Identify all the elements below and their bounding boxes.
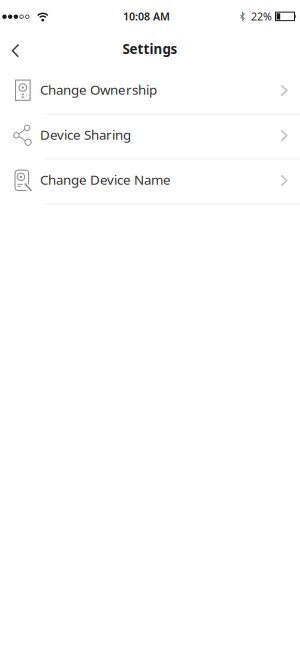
staticText: 22% — [251, 9, 272, 23]
staticText: 10:08 AM — [123, 9, 170, 24]
staticText: Device Sharing — [40, 126, 131, 143]
button[interactable]: Device Sharing — [0, 113, 300, 158]
button[interactable]: Change Ownership — [0, 68, 300, 113]
button[interactable]: Change Device Name — [0, 158, 300, 203]
staticText: Change Device Name — [40, 171, 171, 188]
button[interactable]: Back — [0, 40, 34, 61]
staticText: Settings — [122, 40, 177, 58]
staticText: Change Ownership — [40, 81, 157, 98]
